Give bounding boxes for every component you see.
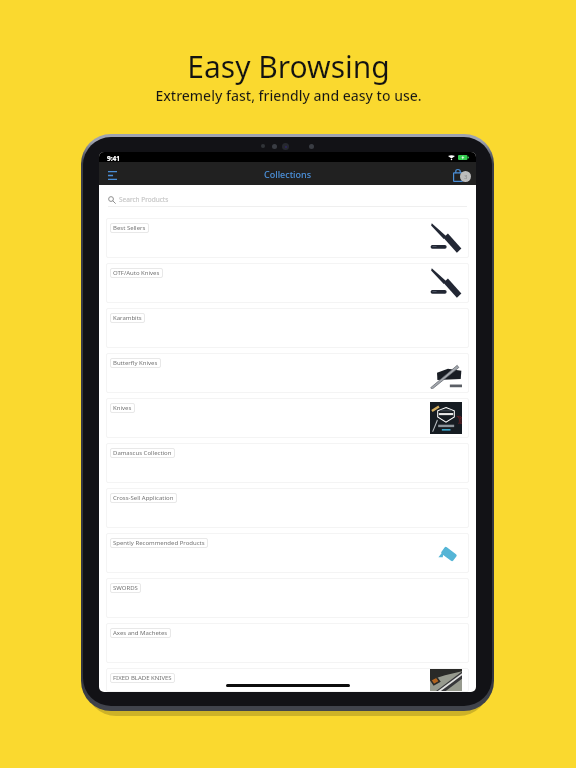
button[interactable]: Knives (106, 398, 469, 438)
staticText: Butterfly Knives (113, 359, 158, 367)
staticText: Knives (113, 404, 132, 412)
button[interactable]: Axes and Machetes (106, 623, 469, 663)
staticText: Spently Recommended Products (113, 539, 205, 547)
staticText: Extremely fast, friendly and easy to use… (155, 86, 422, 105)
button[interactable]: FIXED BLADE KNIVES (106, 668, 469, 692)
button[interactable]: Spently Recommended Products (106, 533, 469, 573)
staticText: Collections (264, 168, 312, 180)
staticText: Best Sellers (113, 224, 146, 232)
staticText: Cross-Sell Application (113, 494, 174, 502)
staticText: Search Products (119, 195, 169, 204)
button[interactable]: Best Sellers (106, 218, 469, 258)
button[interactable]: OTF/Auto Knives (106, 263, 469, 303)
staticText: FIXED BLADE KNIVES (113, 674, 172, 682)
button[interactable]: Shopping cart (452, 167, 472, 185)
staticText: 9:41 (107, 154, 120, 163)
staticText: 3 (464, 173, 468, 181)
staticText: Easy Browsing (187, 46, 390, 87)
button[interactable]: Damascus Collection (106, 443, 469, 483)
button[interactable]: Karambits (106, 308, 469, 348)
staticText: Axes and Machetes (113, 629, 168, 637)
staticText: Karambits (113, 314, 142, 322)
button[interactable]: SWORDS (106, 578, 469, 618)
button[interactable]: Menu (104, 166, 120, 184)
button[interactable]: Butterfly Knives (106, 353, 469, 393)
staticText: SWORDS (113, 584, 138, 592)
staticText: OTF/Auto Knives (113, 269, 160, 277)
button[interactable]: Cross-Sell Application (106, 488, 469, 528)
staticText: Damascus Collection (113, 449, 172, 457)
